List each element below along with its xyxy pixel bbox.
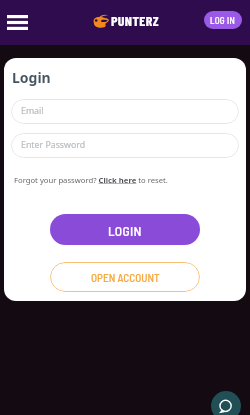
button[interactable]: LOG IN xyxy=(204,11,242,29)
button[interactable]: OPEN ACCOUNT xyxy=(50,262,200,292)
button[interactable]: Chat xyxy=(211,391,241,415)
button[interactable]: LOGIN xyxy=(50,214,200,245)
staticText: PUNTERZ xyxy=(111,12,159,29)
button[interactable]: Enter Password xyxy=(11,133,239,158)
staticText: LOGIN xyxy=(108,222,142,238)
staticText: LOG IN xyxy=(210,15,236,26)
button[interactable]: Menu xyxy=(7,12,28,33)
staticText: Enter Password xyxy=(21,139,86,151)
staticText: Forgot your password? Click here to rese… xyxy=(14,175,168,185)
staticText: OPEN ACCOUNT xyxy=(91,271,160,284)
staticText: Login xyxy=(12,68,51,87)
staticText: Email xyxy=(21,105,44,117)
button[interactable]: Email xyxy=(11,99,239,124)
